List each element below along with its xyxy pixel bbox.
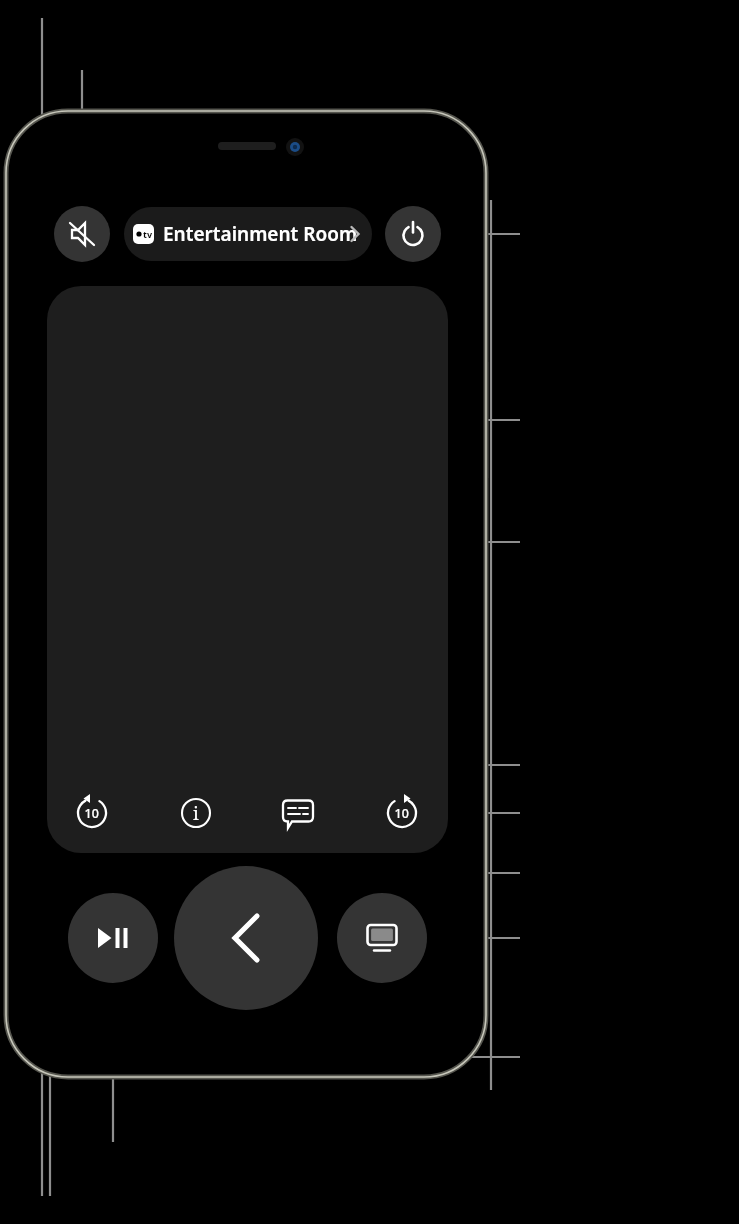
button[interactable]: Info <box>168 785 224 841</box>
button[interactable]: Entertainment Room <box>124 207 372 261</box>
button[interactable]: Power <box>385 206 441 262</box>
button[interactable]: Mute <box>54 206 110 262</box>
button[interactable]: Skip forward 10 seconds <box>374 785 430 841</box>
button[interactable]: Skip back 10 seconds <box>64 785 120 841</box>
button[interactable]: Closed captions <box>270 785 326 841</box>
button[interactable]: TV <box>337 893 427 983</box>
button[interactable]: Play pause <box>68 893 158 983</box>
button[interactable]: Back <box>174 866 318 1010</box>
